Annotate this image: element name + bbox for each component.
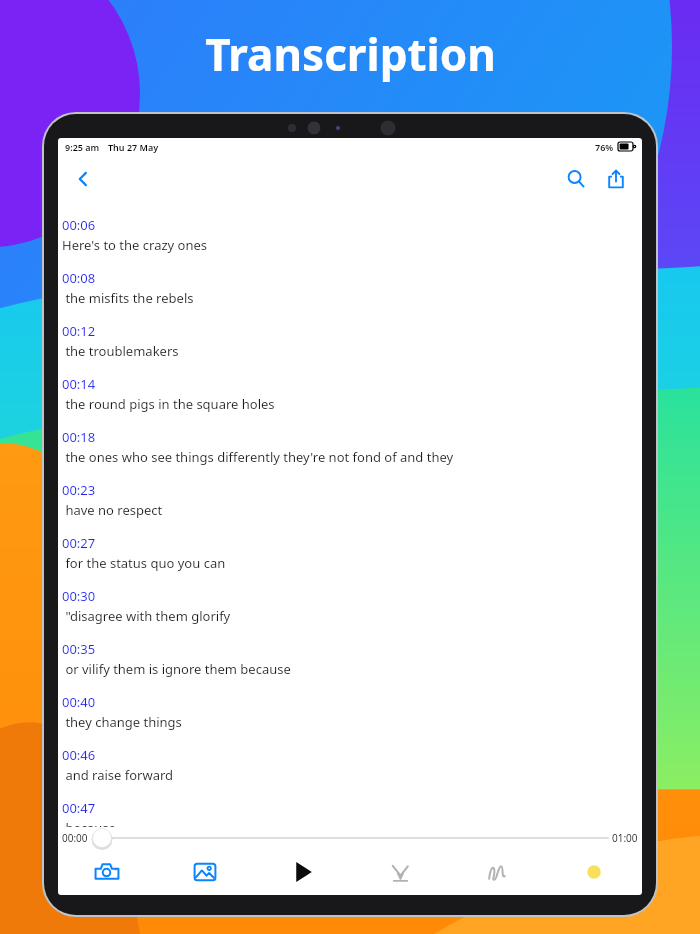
button[interactable]: Seek	[92, 827, 608, 849]
button[interactable]: 00:12	[62, 322, 636, 375]
button[interactable]: Play	[254, 849, 351, 895]
staticText: 00:00	[62, 831, 88, 845]
staticText: the ones who see things differently they…	[62, 448, 454, 466]
staticText: 76%	[595, 141, 614, 153]
staticText: Thu 27 May	[108, 141, 159, 153]
button[interactable]: 00:47	[62, 799, 636, 827]
staticText: the troublemakers	[62, 342, 179, 360]
staticText: Here's to the crazy ones	[62, 236, 208, 254]
staticText: 00:27	[62, 534, 96, 552]
button[interactable]: Pen	[448, 849, 545, 895]
staticText: 00:08	[62, 269, 96, 287]
staticText: 00:35	[62, 640, 96, 658]
staticText: 00:23	[62, 481, 96, 499]
button[interactable]: Share	[598, 161, 634, 197]
staticText: 00:06	[62, 216, 96, 234]
staticText: have no respect	[62, 501, 163, 519]
button[interactable]: 00:14	[62, 375, 636, 428]
button[interactable]: 00:08	[62, 269, 636, 322]
staticText: for the status quo you can	[62, 554, 226, 572]
button[interactable]: Camera	[58, 849, 156, 895]
button[interactable]: 00:30	[62, 587, 636, 640]
staticText: "disagree with them glorify	[62, 607, 231, 625]
staticText: 01:00	[612, 831, 638, 845]
button[interactable]: Back	[64, 160, 102, 198]
staticText: 9:25 am	[65, 141, 100, 153]
staticText: the misfits the rebels	[62, 289, 194, 307]
staticText: 00:14	[62, 375, 96, 393]
staticText: 00:12	[62, 322, 96, 340]
staticText: 00:18	[62, 428, 96, 446]
staticText: Transcription	[205, 24, 496, 84]
staticText: 00:47	[62, 799, 96, 817]
button[interactable]: Highlighter	[351, 849, 448, 895]
button[interactable]: 00:18	[62, 428, 636, 481]
button[interactable]: 00:23	[62, 481, 636, 534]
staticText: and raise forward	[62, 766, 174, 784]
staticText: they change things	[62, 713, 182, 731]
staticText: 00:46	[62, 746, 96, 764]
staticText: because	[62, 819, 116, 827]
staticText: 00:40	[62, 693, 96, 711]
button[interactable]: Search	[558, 161, 594, 197]
button[interactable]: 00:35	[62, 640, 636, 693]
button[interactable]: 00:06	[62, 216, 636, 269]
staticText: 00:30	[62, 587, 96, 605]
button[interactable]: 00:46	[62, 746, 636, 799]
staticText: the round pigs in the square holes	[62, 395, 275, 413]
staticText: or vilify them is ignore them because	[62, 660, 291, 678]
button[interactable]: 00:27	[62, 534, 636, 587]
button[interactable]: Photos	[156, 849, 254, 895]
button[interactable]: 00:40	[62, 693, 636, 746]
button[interactable]: Colour	[545, 849, 642, 895]
